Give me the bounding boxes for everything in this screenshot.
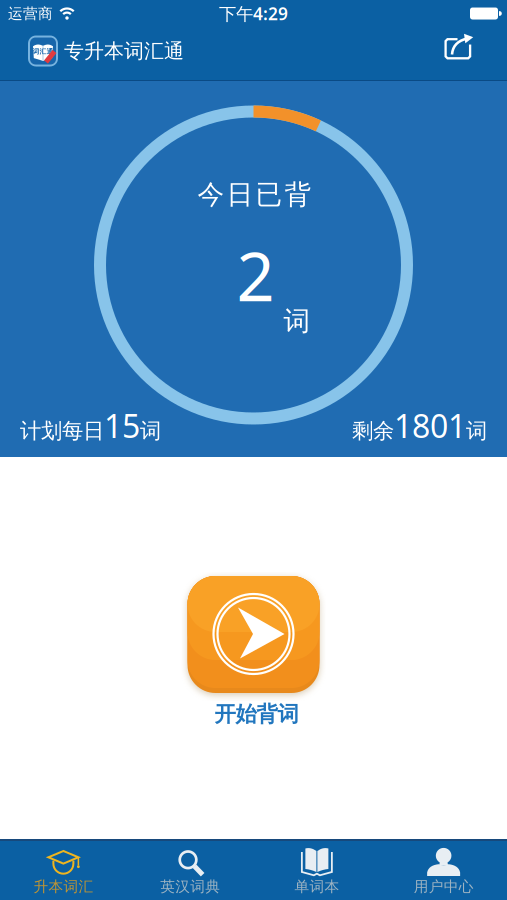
staticText: 词	[140, 418, 161, 444]
staticText: 运营商	[8, 4, 53, 22]
button[interactable]: 单词本	[253, 841, 380, 900]
button[interactable]: 用户中心	[380, 841, 507, 900]
staticText: 剩余	[352, 418, 394, 444]
staticText: 开始背词	[214, 701, 298, 727]
button[interactable]: 英汉词典	[127, 841, 254, 900]
staticText: 词	[466, 418, 487, 444]
button[interactable]: 分享	[444, 37, 475, 64]
staticText: 专升本词汇通	[64, 39, 184, 63]
staticText: 词汇通	[32, 47, 53, 56]
staticText: 升本词汇	[33, 877, 93, 895]
staticText: 用户中心	[414, 877, 474, 895]
staticText: 2	[236, 231, 274, 320]
button[interactable]: 升本词汇	[0, 841, 127, 900]
staticText: 下午4:29	[219, 2, 288, 25]
staticText: 英汉词典	[160, 877, 220, 895]
staticText: 计划每日	[20, 418, 104, 444]
staticText: 今日已背	[197, 178, 311, 211]
staticText: 15	[104, 404, 140, 447]
staticText: 单词本	[294, 877, 339, 895]
button[interactable]: 开始背词	[187, 576, 319, 727]
staticText: 词	[283, 305, 310, 337]
staticText: 1801	[394, 404, 466, 447]
